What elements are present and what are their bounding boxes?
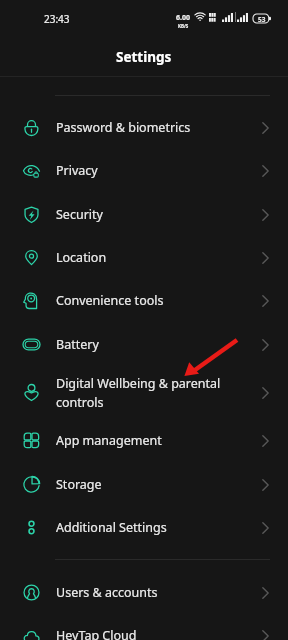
staticText: Users & accounts: [56, 584, 248, 601]
staticText: Convenience tools: [56, 292, 248, 309]
staticText: App management: [56, 432, 248, 449]
button[interactable]: Convenience tools: [0, 279, 288, 322]
button[interactable]: Battery: [0, 323, 288, 366]
button[interactable]: Password & biometrics: [0, 106, 288, 149]
staticText: Settings: [116, 48, 172, 66]
button[interactable]: Storage: [0, 463, 288, 506]
staticText: Location: [56, 249, 248, 266]
button[interactable]: Additional Settings: [0, 506, 288, 549]
button[interactable]: Privacy: [0, 149, 288, 192]
staticText: Storage: [56, 476, 248, 493]
button[interactable]: Security: [0, 193, 288, 236]
button[interactable]: Users & accounts: [0, 571, 288, 614]
staticText: 6.00: [176, 13, 190, 23]
staticText: Security: [56, 206, 248, 223]
button[interactable]: App management: [0, 419, 288, 462]
button[interactable]: HeyTap Cloud: [0, 614, 288, 640]
button[interactable]: Digital Wellbeing & parental controls: [0, 366, 288, 419]
button[interactable]: Location: [0, 236, 288, 279]
staticText: 53: [258, 15, 266, 24]
staticText: Privacy: [56, 162, 248, 179]
staticText: Digital Wellbeing & parental controls: [56, 375, 248, 410]
staticText: Battery: [56, 336, 248, 353]
staticText: Additional Settings: [56, 519, 248, 536]
staticText: 23:43: [44, 12, 70, 26]
staticText: Password & biometrics: [56, 119, 248, 136]
staticText: HeyTap Cloud: [56, 627, 248, 640]
staticText: KB/S: [178, 23, 189, 29]
